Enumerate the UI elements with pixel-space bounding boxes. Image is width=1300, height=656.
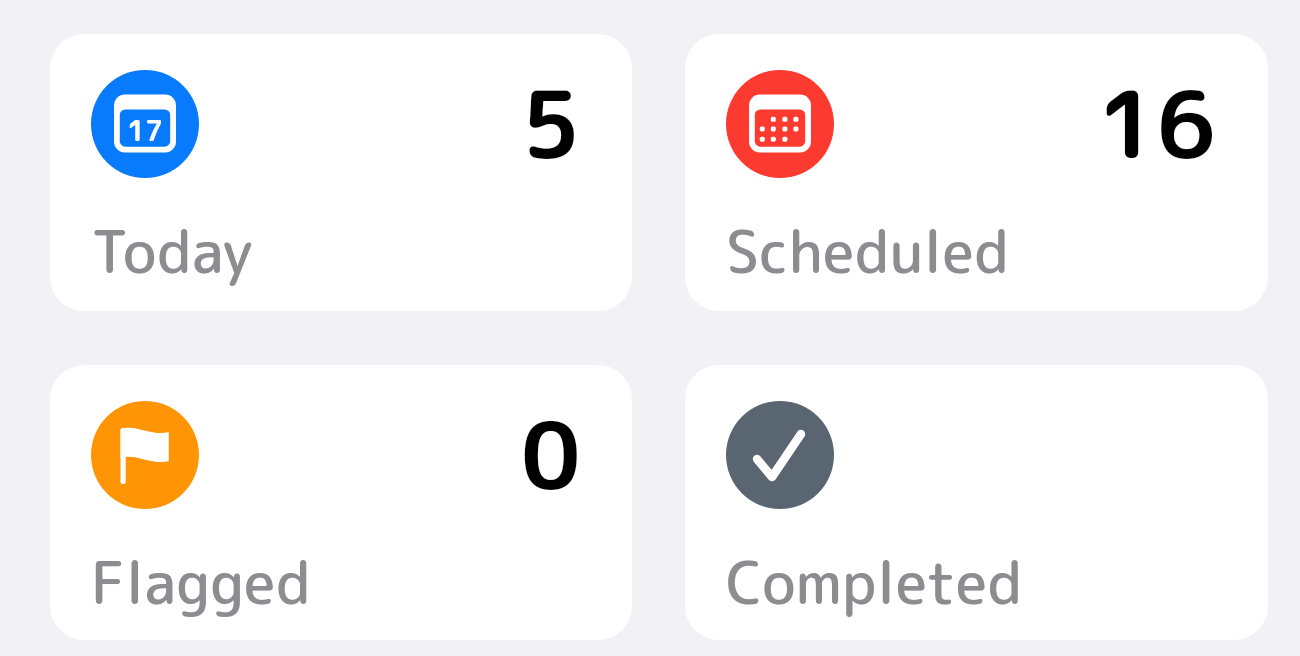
staticText: 5 <box>521 58 581 188</box>
staticText: Flagged <box>91 541 311 623</box>
button[interactable]: Scheduled reminders <box>685 34 1268 311</box>
staticText: 0 <box>521 389 581 519</box>
staticText: 17 <box>127 111 163 150</box>
staticText: 16 <box>1097 58 1217 188</box>
button[interactable]: Completed reminders <box>685 365 1268 640</box>
button[interactable]: Today reminders <box>50 34 632 311</box>
other: Scheduled reminders <box>726 70 834 178</box>
staticText: Scheduled <box>726 210 1009 292</box>
staticText: Today <box>91 210 253 292</box>
other: Completed reminders <box>726 401 834 509</box>
staticText: Completed <box>726 541 1023 623</box>
other: Today reminders <box>91 70 199 178</box>
button[interactable]: Flagged reminders <box>50 365 632 640</box>
other: Flagged reminders <box>91 401 199 509</box>
